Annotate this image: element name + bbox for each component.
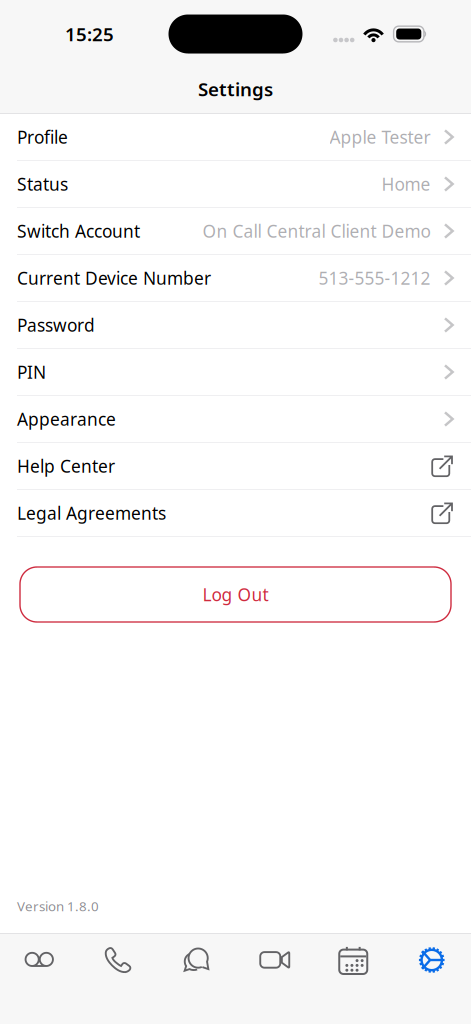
- button[interactable]: Settings: [392, 934, 471, 986]
- button[interactable]: Log Out: [0, 537, 471, 622]
- button[interactable]: Current Device Number: [0, 255, 471, 302]
- staticText: Apple Tester: [330, 125, 431, 148]
- button[interactable]: Appearance: [0, 396, 471, 443]
- staticText: Status: [17, 172, 68, 195]
- button[interactable]: Profile: [0, 114, 471, 161]
- button[interactable]: Voicemail: [0, 934, 78, 986]
- staticText: Switch Account: [17, 219, 140, 242]
- staticText: Password: [17, 313, 95, 336]
- staticText: On Call Central Client Demo: [203, 219, 431, 242]
- staticText: Log Out: [202, 583, 268, 606]
- staticText: Home: [382, 172, 431, 195]
- staticText: Version 1.8.0: [17, 897, 99, 915]
- staticText: Current Device Number: [17, 266, 211, 289]
- button[interactable]: PIN: [0, 349, 471, 396]
- button[interactable]: Status: [0, 161, 471, 208]
- staticText: Legal Agreements: [17, 501, 166, 524]
- button[interactable]: Password: [0, 302, 471, 349]
- button[interactable]: Calendar: [314, 934, 392, 986]
- button[interactable]: Help Center: [0, 443, 471, 490]
- staticText: 513-555-1212: [319, 266, 431, 289]
- staticText: Help Center: [17, 454, 115, 477]
- staticText: Appearance: [17, 407, 116, 430]
- button[interactable]: Video: [235, 934, 314, 986]
- staticText: 15:25: [65, 22, 114, 46]
- button[interactable]: Switch Account: [0, 208, 471, 255]
- button[interactable]: Legal Agreements: [0, 490, 471, 537]
- button[interactable]: Messages: [157, 934, 235, 986]
- button[interactable]: Phone: [78, 934, 157, 986]
- staticText: Settings: [198, 77, 273, 101]
- staticText: PIN: [17, 360, 46, 383]
- staticText: Profile: [17, 125, 68, 148]
